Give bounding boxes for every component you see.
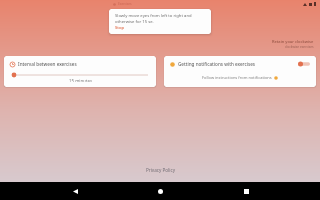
staticText: Privacy Policy (146, 167, 175, 173)
button[interactable]: Getting notifications with exercises (164, 56, 316, 87)
button[interactable]: Back (64, 182, 86, 200)
staticText: Stop (115, 25, 125, 30)
staticText: Follow instructions from notifications (202, 75, 272, 80)
button[interactable]: Recents (235, 182, 257, 200)
staticText: Interval between exercises (18, 61, 77, 67)
staticText: Retain your clockwise (272, 39, 314, 44)
staticText: Exercises (118, 2, 132, 6)
staticText: 15 minutes (69, 78, 92, 82)
button[interactable]: Toggle notifications (298, 61, 310, 67)
button[interactable]: Stop (115, 25, 127, 30)
staticText: Slowly move eyes from left to right and … (115, 13, 205, 25)
button[interactable]: Interval between exercises (4, 56, 156, 87)
button[interactable]: Home (149, 182, 171, 200)
button[interactable]: Privacy Policy (142, 165, 179, 175)
staticText: Getting notifications with exercises (178, 61, 256, 67)
button[interactable] (10, 72, 150, 78)
staticText: clockwise exercises (285, 45, 314, 49)
